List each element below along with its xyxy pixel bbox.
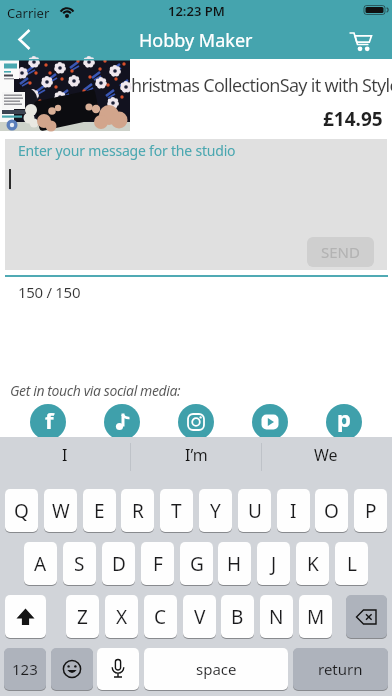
staticText: Get in touch via social media: (10, 381, 181, 400)
button[interactable] (346, 595, 387, 638)
button[interactable] (0, 59, 392, 131)
staticText: f (45, 405, 54, 435)
button[interactable]: G (180, 542, 213, 585)
button[interactable]: B (221, 595, 254, 638)
button[interactable] (0, 437, 131, 484)
staticText: 150 / 150 (18, 282, 81, 302)
button[interactable]: O (315, 489, 348, 532)
button[interactable] (178, 404, 214, 440)
button[interactable] (5, 595, 46, 638)
button[interactable]: F (141, 542, 174, 585)
staticText: B (231, 604, 244, 630)
staticText: SEND (321, 242, 360, 262)
staticText: space (196, 659, 237, 679)
button[interactable]: E (83, 489, 116, 532)
button[interactable]: L (335, 542, 368, 585)
staticText: Q (14, 498, 29, 524)
staticText: J (271, 551, 277, 577)
button[interactable]: X (105, 595, 138, 638)
staticText: D (112, 551, 126, 577)
button[interactable]: R (121, 489, 154, 532)
staticText: Hobby Maker (139, 28, 253, 53)
button[interactable]: 123 (4, 648, 46, 690)
button[interactable]: C (144, 595, 177, 638)
staticText: hristmas CollectionSay it with StyleChri… (131, 73, 392, 98)
button[interactable]: Z (66, 595, 99, 638)
button[interactable] (344, 25, 380, 55)
staticText: £14.95 (323, 106, 383, 129)
staticText: O (324, 498, 339, 524)
button[interactable]: S (63, 542, 96, 585)
button[interactable]: f (30, 404, 66, 440)
staticText: K (307, 551, 319, 577)
staticText: 123 (12, 659, 38, 679)
button[interactable] (104, 404, 140, 440)
staticText: E (94, 498, 105, 524)
staticText: F (153, 551, 163, 577)
staticText: Y (210, 498, 221, 524)
staticText: Carrier (7, 4, 50, 22)
staticText: S (74, 551, 85, 577)
button[interactable] (97, 648, 139, 690)
staticText: p (337, 404, 351, 433)
button[interactable]: p (326, 404, 362, 440)
staticText: Z (77, 604, 88, 630)
button[interactable]: return (293, 648, 388, 690)
staticText: T (171, 498, 182, 524)
button[interactable]: K (296, 542, 329, 585)
staticText: return (318, 659, 363, 679)
button[interactable] (5, 139, 387, 270)
staticText: P (365, 498, 377, 524)
staticText: M (307, 604, 325, 630)
staticText: I (290, 498, 297, 524)
staticText: C (154, 604, 167, 630)
staticText: W (52, 498, 70, 524)
button[interactable]: space (144, 648, 288, 690)
button[interactable]: M (299, 595, 332, 638)
button[interactable]: N (260, 595, 293, 638)
button[interactable]: I (277, 489, 310, 532)
staticText: X (116, 604, 128, 630)
button[interactable]: W (44, 489, 77, 532)
button[interactable]: V (183, 595, 216, 638)
button[interactable] (8, 25, 44, 55)
button[interactable]: J (257, 542, 290, 585)
button[interactable]: D (102, 542, 135, 585)
staticText: V (194, 604, 206, 630)
button[interactable]: P (354, 489, 387, 532)
button[interactable]: SEND (307, 237, 374, 267)
button[interactable]: T (160, 489, 193, 532)
button[interactable]: Q (5, 489, 38, 532)
button[interactable]: U (238, 489, 271, 532)
staticText: N (269, 604, 284, 630)
button[interactable] (262, 437, 392, 484)
staticText: U (248, 498, 262, 524)
staticText: I (62, 444, 68, 466)
button[interactable]: Y (199, 489, 232, 532)
button[interactable]: A (24, 542, 57, 585)
button[interactable] (131, 437, 262, 484)
staticText: Enter your message for the studio (18, 141, 236, 160)
button[interactable]: H (218, 542, 251, 585)
button[interactable] (252, 404, 288, 440)
staticText: H (227, 551, 242, 577)
staticText: L (347, 551, 357, 577)
staticText: G (190, 551, 204, 577)
staticText: We (314, 444, 338, 466)
staticText: R (132, 498, 144, 524)
button[interactable] (51, 648, 93, 690)
staticText: A (34, 551, 47, 577)
staticText: I’m (185, 444, 208, 466)
staticText: 12:23 PM (168, 2, 225, 20)
